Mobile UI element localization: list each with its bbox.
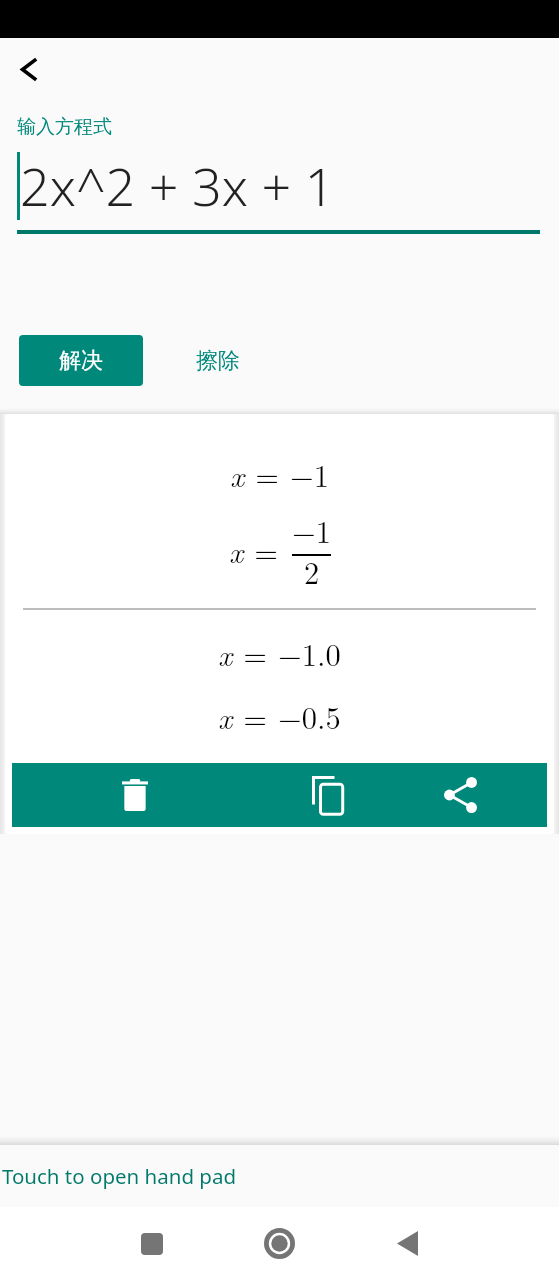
staticText: x (218, 632, 233, 675)
staticText: −1 (290, 453, 329, 496)
staticText: x (218, 695, 233, 738)
staticText: = (233, 695, 278, 738)
staticText: 2 (304, 550, 320, 593)
button[interactable]: 擦除 (175, 335, 261, 386)
button[interactable]: Recent apps (88, 1207, 216, 1280)
button[interactable]: Copy (281, 763, 373, 827)
button[interactable]: Back (5, 45, 53, 93)
button[interactable]: 解决 (19, 335, 143, 386)
staticText: 2x^2 + 3x + 1 (20, 150, 335, 221)
staticText: −1.0 (278, 632, 341, 675)
staticText: −1 (292, 509, 331, 552)
button[interactable]: Share (373, 763, 547, 827)
staticText: = (244, 529, 289, 572)
button[interactable]: Touch to open hand pad (0, 1145, 559, 1207)
staticText: 输入方程式 (17, 115, 112, 139)
button[interactable]: Delete (12, 763, 281, 827)
staticText: = (233, 632, 278, 675)
staticText: 擦除 (196, 347, 240, 375)
staticText: Touch to open hand pad (2, 1162, 237, 1190)
staticText: x (229, 529, 244, 572)
staticText: = (245, 453, 290, 496)
staticText: x (230, 453, 245, 496)
button[interactable]: Home (216, 1207, 343, 1280)
button[interactable]: Back (343, 1207, 471, 1280)
staticText: 解决 (59, 347, 103, 375)
staticText: −0.5 (278, 695, 341, 738)
